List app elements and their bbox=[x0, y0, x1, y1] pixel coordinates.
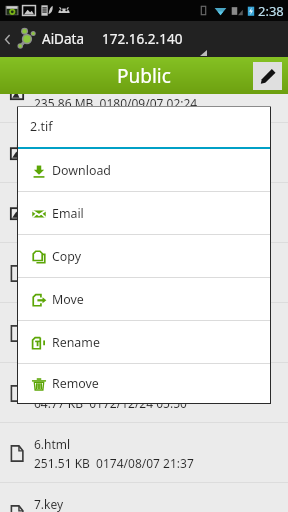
button[interactable]: 2.tif bbox=[0, 183, 288, 243]
staticText: 7.key bbox=[34, 496, 64, 512]
button[interactable]: 0.png bbox=[0, 63, 288, 123]
staticText: 120.64 KB 0171/11/02 17:45 bbox=[34, 275, 194, 291]
staticText: 84.20 KB 0177/05/21 08:11 bbox=[34, 215, 187, 231]
button[interactable]: 3.gif bbox=[0, 243, 288, 303]
staticText: 3.gif bbox=[34, 256, 59, 272]
staticText: 512.23 KB 0178/03/12 14:01 bbox=[34, 155, 194, 171]
staticText: AiData bbox=[42, 30, 84, 48]
staticText: 172.16.2.140 bbox=[102, 30, 183, 48]
staticText: 4.doc bbox=[34, 316, 65, 332]
staticText: Download bbox=[52, 162, 111, 179]
staticText: 2:38 bbox=[258, 2, 284, 20]
staticText: 5.txt bbox=[34, 376, 60, 392]
button[interactable]: Edit bbox=[253, 62, 282, 90]
staticText: 251.51 KB 0174/08/07 21:37 bbox=[34, 455, 194, 471]
staticText: 9.31 KB 0179/03/18 22:02 bbox=[34, 335, 181, 351]
button[interactable]: Email bbox=[18, 192, 270, 235]
button[interactable]: 5.txt bbox=[0, 363, 288, 423]
staticText: 64.77 KB 0172/12/24 05:50 bbox=[34, 395, 187, 411]
staticText: Move bbox=[52, 291, 84, 308]
staticText: Public bbox=[117, 63, 171, 89]
button[interactable]: 4.doc bbox=[0, 303, 288, 363]
staticText: Copy bbox=[52, 248, 82, 265]
staticText: Remove bbox=[52, 375, 99, 392]
button[interactable]: Rename bbox=[18, 321, 270, 364]
button[interactable]: 1.bmp bbox=[0, 123, 288, 183]
button[interactable]: Remove bbox=[18, 364, 270, 403]
staticText: 2.tif bbox=[30, 118, 53, 135]
staticText: 2.tif bbox=[34, 196, 56, 212]
other: Back bbox=[4, 33, 11, 46]
button[interactable]: 7.key bbox=[0, 483, 288, 512]
button[interactable]: Download bbox=[18, 149, 270, 192]
button[interactable]: 6.html bbox=[0, 423, 288, 483]
staticText: Email bbox=[52, 205, 84, 222]
staticText: 6.html bbox=[34, 436, 71, 452]
staticText: 235.86 MB 0180/09/07 02:24 bbox=[34, 95, 198, 111]
button[interactable]: Copy bbox=[18, 235, 270, 278]
staticText: 1.bmp bbox=[34, 136, 71, 152]
button[interactable]: Move bbox=[18, 278, 270, 321]
staticText: 0.png bbox=[34, 76, 67, 92]
staticText: Rename bbox=[52, 334, 100, 351]
